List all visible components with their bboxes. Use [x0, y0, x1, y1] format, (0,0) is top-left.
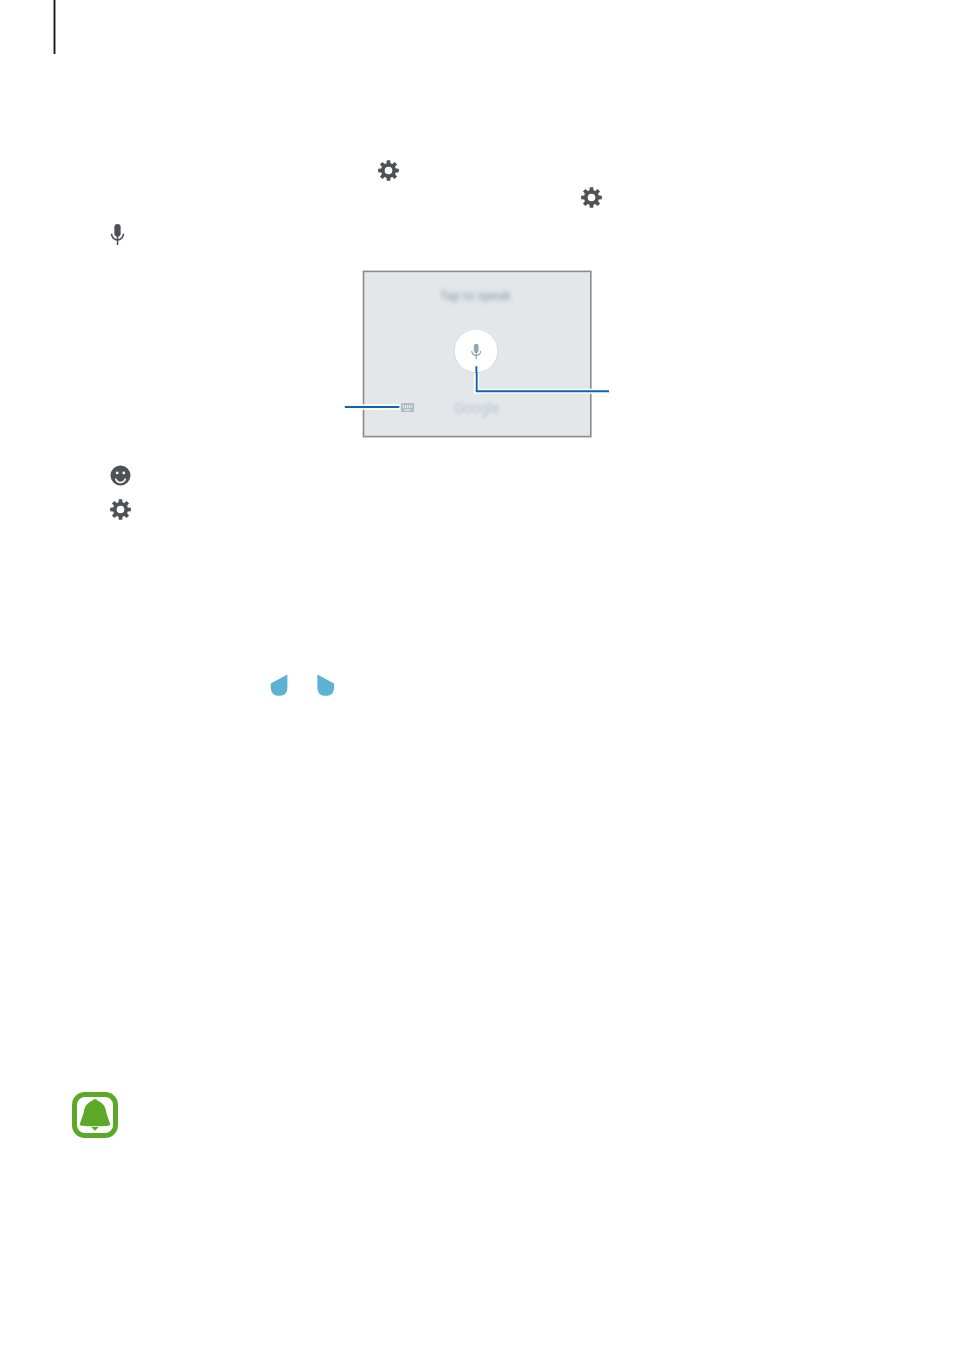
button[interactable]: Emoji [110, 465, 131, 486]
button[interactable]: Tap to speak [454, 329, 498, 373]
button[interactable]: Note [72, 1092, 118, 1138]
button[interactable]: Keyboard settings [110, 499, 131, 520]
button[interactable]: Voice input [107, 224, 128, 245]
staticText: Google [454, 399, 500, 417]
button[interactable]: Settings [581, 187, 602, 208]
button[interactable]: Settings [378, 160, 399, 181]
staticText: Tap to speak [440, 287, 511, 303]
button[interactable]: Switch to keyboard [401, 403, 414, 412]
